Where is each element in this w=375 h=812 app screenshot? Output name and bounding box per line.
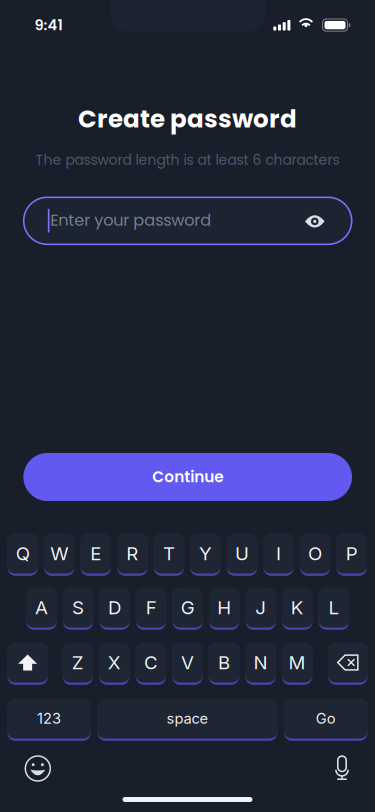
button[interactable]: Emoji — [25, 755, 51, 781]
button[interactable]: J — [245, 586, 276, 629]
staticText: E — [90, 542, 101, 565]
button[interactable]: A — [26, 586, 57, 629]
staticText: Enter your password — [50, 209, 211, 231]
staticText: space — [166, 710, 208, 727]
staticText: Y — [199, 542, 212, 565]
button[interactable]: M — [281, 641, 313, 684]
staticText: J — [255, 596, 266, 619]
button[interactable]: D — [99, 586, 130, 629]
staticText: I — [276, 542, 281, 565]
button[interactable]: G — [172, 586, 203, 629]
button[interactable]: N — [245, 641, 276, 684]
staticText: L — [328, 596, 339, 619]
staticText: U — [235, 542, 249, 565]
staticText: N — [253, 651, 267, 674]
staticText: X — [108, 651, 121, 674]
button[interactable]: T — [153, 532, 184, 575]
staticText: F — [146, 596, 157, 619]
button[interactable]: V — [172, 641, 203, 684]
button[interactable]: Enter your password — [24, 197, 352, 244]
staticText: W — [50, 542, 68, 565]
button[interactable]: F — [135, 586, 167, 629]
button[interactable]: Backspace — [328, 641, 368, 684]
staticText: R — [126, 542, 138, 565]
button[interactable]: S — [62, 586, 94, 629]
button[interactable]: H — [209, 586, 240, 629]
staticText: Continue — [152, 466, 223, 488]
staticText: 9:41 — [34, 15, 62, 35]
button[interactable]: I — [263, 532, 294, 575]
staticText: Q — [16, 542, 30, 565]
button[interactable]: O — [299, 532, 331, 575]
button[interactable]: B — [208, 641, 240, 684]
button[interactable]: Q — [7, 532, 38, 575]
staticText: The password length is at least 6 charac… — [35, 150, 339, 170]
staticText: K — [291, 596, 304, 619]
button[interactable]: Z — [62, 641, 93, 684]
staticText: B — [218, 651, 230, 674]
staticText: A — [35, 596, 48, 619]
button[interactable]: Dictation — [333, 754, 351, 780]
button[interactable]: space — [97, 697, 278, 740]
button[interactable]: U — [226, 532, 258, 575]
staticText: Z — [72, 651, 84, 674]
staticText: T — [163, 542, 175, 565]
button[interactable]: Y — [190, 532, 221, 575]
staticText: C — [144, 651, 158, 674]
staticText: Go — [316, 710, 336, 727]
button[interactable]: W — [44, 532, 75, 575]
button[interactable]: C — [135, 641, 166, 684]
button[interactable]: Continue — [23, 453, 352, 501]
button[interactable]: K — [282, 586, 313, 629]
button[interactable]: Go — [284, 697, 368, 740]
staticText: O — [308, 542, 322, 565]
button[interactable]: P — [336, 532, 367, 575]
staticText: 123 — [37, 710, 61, 727]
staticText: S — [72, 596, 84, 619]
button[interactable]: Shift — [7, 641, 48, 684]
staticText: M — [289, 651, 306, 674]
button[interactable]: L — [318, 586, 349, 629]
button[interactable]: 123 — [7, 697, 91, 740]
staticText: Create password — [78, 102, 297, 136]
button[interactable]: X — [99, 641, 130, 684]
staticText: P — [346, 542, 358, 565]
staticText: H — [217, 596, 231, 619]
staticText: G — [181, 596, 195, 619]
staticText: D — [108, 596, 121, 619]
button[interactable]: E — [80, 532, 111, 575]
button[interactable]: R — [117, 532, 148, 575]
staticText: V — [181, 651, 194, 674]
